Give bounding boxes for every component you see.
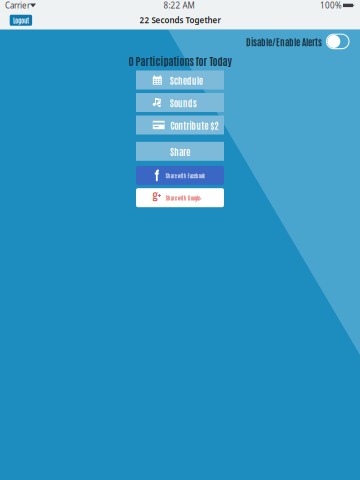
button[interactable]: Disable/Enable Alerts [246, 33, 360, 50]
staticText: Sounds [170, 96, 197, 109]
button[interactable]: Sounds [136, 93, 224, 112]
staticText: Schedule [170, 74, 203, 86]
staticText: 100% [320, 0, 342, 11]
button[interactable]: Share with Facebook [136, 166, 224, 185]
button[interactable]: g [136, 188, 224, 207]
staticText: Share [170, 145, 190, 157]
staticText: 0 Participations for Today [128, 54, 231, 67]
staticText: Share with Facebook [165, 172, 204, 179]
staticText: g [152, 185, 157, 203]
staticText: Disable/Enable Alerts [246, 35, 322, 47]
button[interactable]: Logout [10, 15, 32, 26]
staticText: Carrier [5, 0, 30, 11]
staticText: Share with Google+ [166, 194, 202, 201]
staticText: 8:22 AM [163, 0, 194, 11]
button[interactable]: Contribute $2 [136, 115, 224, 134]
staticText: Contribute $2 [170, 119, 218, 131]
button[interactable]: Schedule [136, 70, 224, 89]
staticText: 22 Seconds Together [139, 15, 220, 25]
staticText: Logout [13, 16, 29, 24]
button[interactable]: Share [136, 142, 224, 161]
